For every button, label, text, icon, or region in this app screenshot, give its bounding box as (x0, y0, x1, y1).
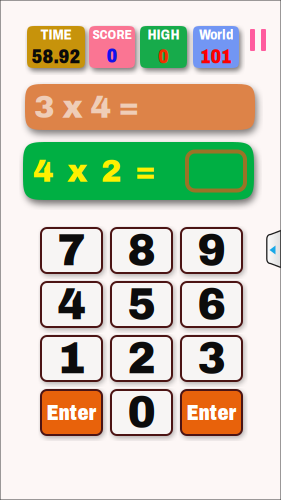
staticText: Enter (186, 400, 236, 425)
staticText: 3 x 4 = (34, 90, 140, 124)
staticText: World (199, 27, 233, 43)
staticText: TIME (40, 27, 71, 43)
button[interactable]: 1 (41, 336, 102, 381)
button[interactable]: 8 (111, 228, 172, 273)
staticText: 8 (127, 227, 155, 274)
staticText: 101 (200, 46, 231, 67)
button[interactable]: Enter (181, 390, 242, 435)
staticText: Enter (46, 400, 96, 425)
button[interactable]: World (193, 26, 239, 68)
staticText: 6 (197, 281, 225, 328)
button[interactable]: 9 (181, 228, 242, 273)
button[interactable]: Open menu (266, 229, 281, 269)
button[interactable]: Enter (41, 390, 102, 435)
button[interactable]: HIGH (140, 26, 187, 68)
staticText: 3 (197, 335, 225, 382)
staticText: 0 (158, 46, 169, 67)
button[interactable]: 7 (41, 228, 102, 273)
button[interactable]: 0 (111, 390, 172, 435)
staticText: 0 (106, 45, 117, 67)
staticText: 2 (127, 335, 155, 382)
staticText: 7 (57, 227, 85, 274)
staticText: 4 x 2 = (33, 154, 156, 188)
button[interactable]: SCORE (89, 26, 135, 68)
staticText: 5 (127, 281, 155, 328)
staticText: 1 (57, 335, 85, 382)
button[interactable]: 3 (181, 336, 242, 381)
staticText: 4 (57, 281, 85, 328)
staticText: 9 (197, 227, 225, 274)
button[interactable]: 4 (41, 282, 102, 327)
button[interactable]: TIME (27, 26, 85, 68)
button[interactable]: Pause (244, 28, 272, 52)
button[interactable]: 6 (181, 282, 242, 327)
staticText: 0 (127, 389, 155, 436)
staticText: 58.92 (31, 46, 80, 67)
staticText: HIGH (147, 27, 179, 43)
button[interactable]: 5 (111, 282, 172, 327)
button[interactable]: 2 (111, 336, 172, 381)
staticText: SCORE (92, 27, 131, 42)
